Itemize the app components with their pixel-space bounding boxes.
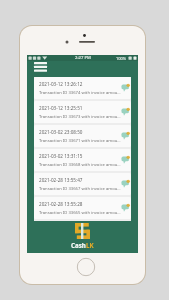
staticText: 100%: [116, 56, 127, 61]
button[interactable]: 2021-03-12 13:25:51: [34, 101, 131, 123]
button[interactable]: 2021-02-28 13:55:47: [34, 173, 131, 195]
staticText: 2021-03-12 13:25:51: [39, 105, 83, 111]
staticText: Transaction ID 33674 with invoice amount…: [39, 90, 121, 96]
staticText: Transaction ID 33667 with invoice amount…: [39, 186, 121, 192]
button[interactable]: 2021-03-02 13:31:15: [34, 149, 131, 171]
staticText: LK: [86, 241, 94, 249]
staticText: 2021-03-12 13:26:12: [39, 81, 83, 87]
staticText: 2021-03-02 23:08:50: [39, 129, 83, 135]
staticText: 2021-02-28 13:55:47: [39, 177, 83, 183]
staticText: Transaction ID 33665 with invoice amount…: [39, 210, 121, 216]
button[interactable]: 2021-03-02 23:08:50: [34, 125, 131, 147]
button[interactable]: 2021-02-28 13:55:28: [34, 197, 131, 219]
staticText: Transaction ID 33671 with invoice amount…: [39, 138, 121, 144]
button[interactable]: 2021-03-12 13:26:12: [34, 77, 131, 99]
staticText: Cash: [71, 241, 86, 249]
staticText: 2021-03-02 13:31:15: [39, 153, 83, 159]
button[interactable]: Open navigation menu: [32, 61, 49, 77]
staticText: 2:27 PM: [75, 55, 91, 61]
staticText: Transaction ID 33668 with invoice amount…: [39, 162, 121, 168]
staticText: Transaction ID 33673 with invoice amount…: [39, 114, 121, 120]
staticText: 2021-02-28 13:55:28: [39, 201, 83, 207]
